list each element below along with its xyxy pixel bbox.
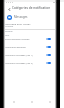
button[interactable]: Back [6, 6, 12, 12]
staticText: Nouveaux messages (SIM 2) [5, 62, 33, 65]
staticText: Messages [14, 15, 28, 19]
button[interactable]: Home [23, 98, 41, 106]
staticText: Notification générale [5, 46, 26, 49]
staticText: Tout [5, 34, 10, 37]
staticText: Synchronisation avancée [5, 38, 30, 41]
staticText: Affichage pour toutes [5, 22, 31, 25]
button[interactable] [0, 52, 64, 60]
staticText: Catégories de notification [12, 6, 51, 10]
staticText: Nouveaux messages (SIM 1) [5, 54, 33, 57]
staticText: Autorisé [5, 25, 14, 28]
button[interactable]: Messages [0, 13, 64, 21]
button[interactable] [0, 21, 64, 29]
button[interactable] [0, 36, 64, 44]
button[interactable]: Recents [41, 98, 59, 106]
button[interactable] [0, 44, 64, 52]
button[interactable] [0, 60, 64, 68]
button[interactable]: Back [5, 98, 23, 106]
staticText: Général [5, 30, 13, 33]
